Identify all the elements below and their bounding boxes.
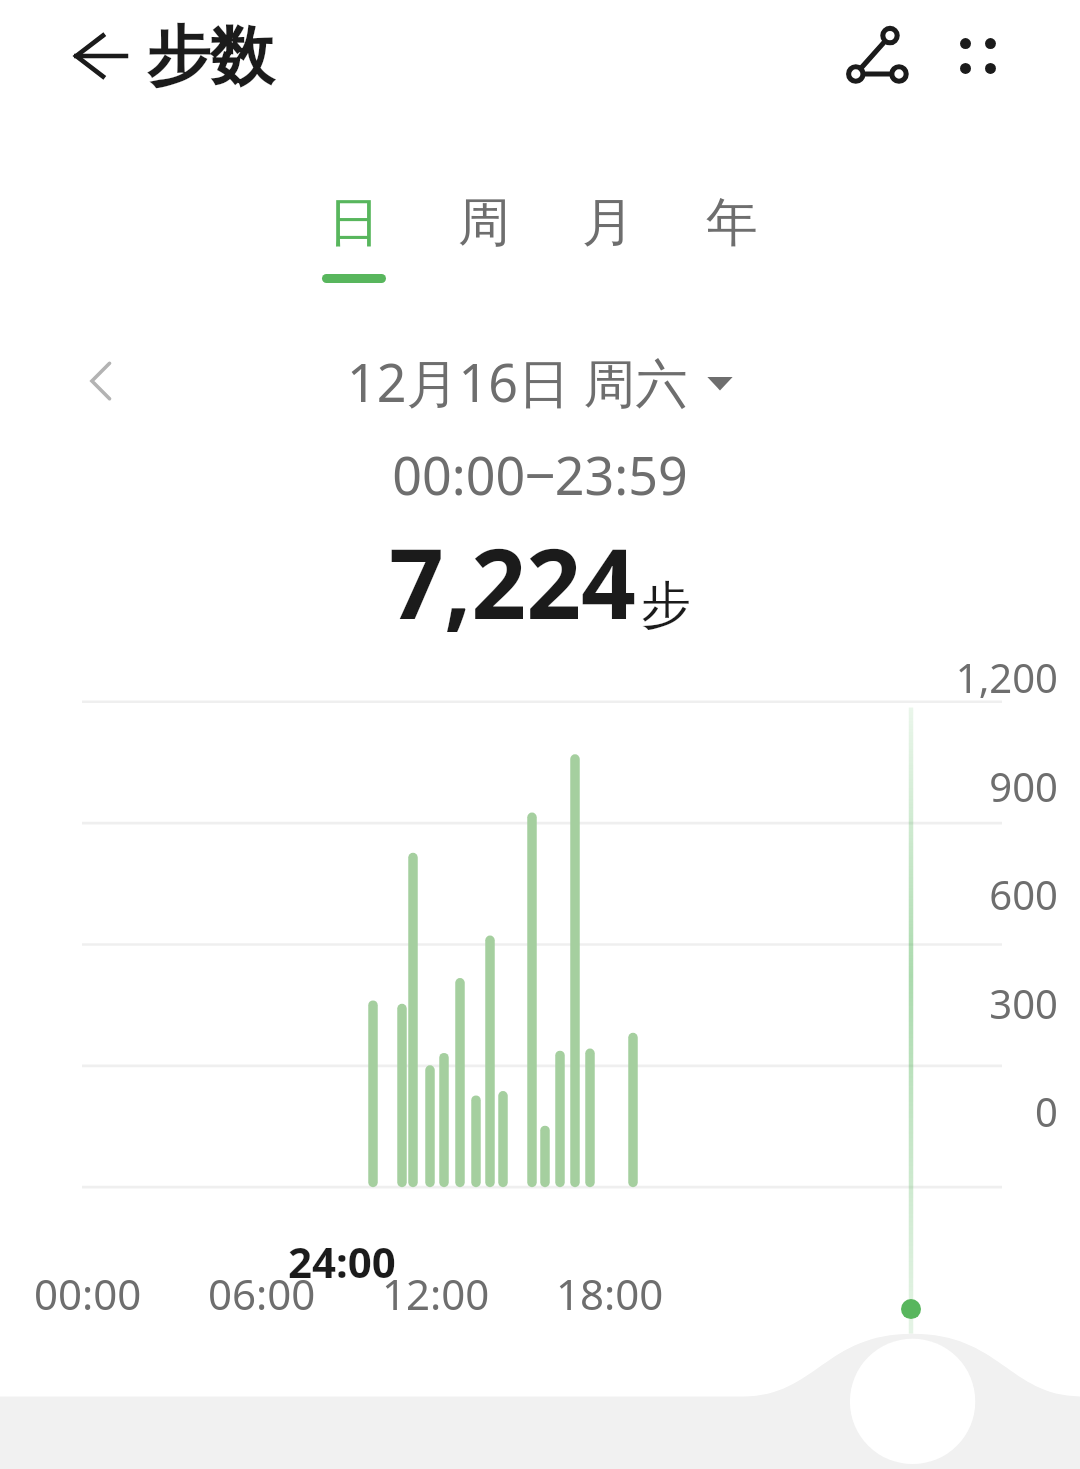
staticText: 300 xyxy=(0,976,1058,1030)
button[interactable]: 12月16日 周六 xyxy=(347,346,734,417)
staticText: 600 xyxy=(0,867,1058,921)
button[interactable]: 日 xyxy=(322,190,386,283)
staticText: 00:00 xyxy=(34,1265,142,1322)
staticText: 12:00 xyxy=(382,1265,490,1322)
staticText: 12月16日 周六 xyxy=(347,346,688,417)
staticText: 0 xyxy=(0,1084,1058,1138)
button[interactable]: 周 xyxy=(458,190,510,283)
staticText: 00:00‒23:59 xyxy=(0,439,1080,510)
staticText: 06:00 xyxy=(208,1265,316,1322)
staticText: 年 xyxy=(706,190,758,256)
staticText: 1,200 xyxy=(0,650,1058,704)
button[interactable]: More options xyxy=(928,6,1028,106)
staticText: 月 xyxy=(582,190,634,256)
staticText: 步数 xyxy=(146,16,274,97)
staticText: 7,224 xyxy=(389,516,637,647)
staticText: 周 xyxy=(458,190,510,256)
button[interactable]: 月 xyxy=(582,190,634,283)
button[interactable]: Back xyxy=(60,18,136,94)
staticText: 日 xyxy=(328,190,380,256)
staticText: 步 xyxy=(641,574,691,637)
staticText: 900 xyxy=(0,759,1058,813)
staticText: 24:00 xyxy=(288,1233,396,1290)
button[interactable]: Previous day xyxy=(70,349,134,413)
button[interactable]: Share xyxy=(828,6,928,106)
staticText: 18:00 xyxy=(556,1265,664,1322)
button[interactable]: 年 xyxy=(706,190,758,283)
